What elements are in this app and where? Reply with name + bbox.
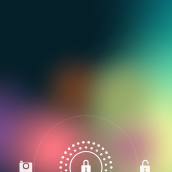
button[interactable]: Camera	[4, 152, 42, 172]
button[interactable]: Unlock shortcut	[132, 152, 170, 172]
button[interactable]: Unlock	[0, 0, 172, 172]
